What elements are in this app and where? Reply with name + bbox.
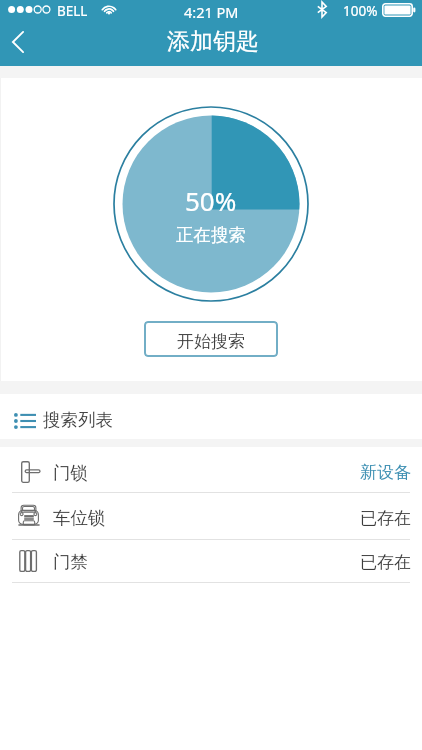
staticText: 已存在 xyxy=(360,552,411,573)
staticText: 添加钥匙 xyxy=(167,27,259,56)
button[interactable]: 门锁 xyxy=(0,447,422,493)
staticText: BELL xyxy=(57,2,88,20)
staticText: 门锁 xyxy=(53,462,88,484)
staticText: 车位锁 xyxy=(53,507,106,529)
button[interactable]: 车位锁 xyxy=(0,493,422,540)
staticText: 100% xyxy=(343,2,378,20)
staticText: 开始搜索 xyxy=(177,331,245,352)
staticText: 50% xyxy=(185,183,237,218)
staticText: 4:21 PM xyxy=(184,2,239,21)
staticText: 正在搜索 xyxy=(176,224,246,246)
button[interactable]: 开始搜索 xyxy=(144,321,278,357)
staticText: 新设备 xyxy=(360,462,411,483)
button[interactable]: 门禁 xyxy=(0,540,422,583)
staticText: 搜索列表 xyxy=(43,409,113,431)
staticText: 门禁 xyxy=(53,551,88,573)
staticText: 已存在 xyxy=(360,508,411,529)
button[interactable]: Back xyxy=(0,24,36,60)
